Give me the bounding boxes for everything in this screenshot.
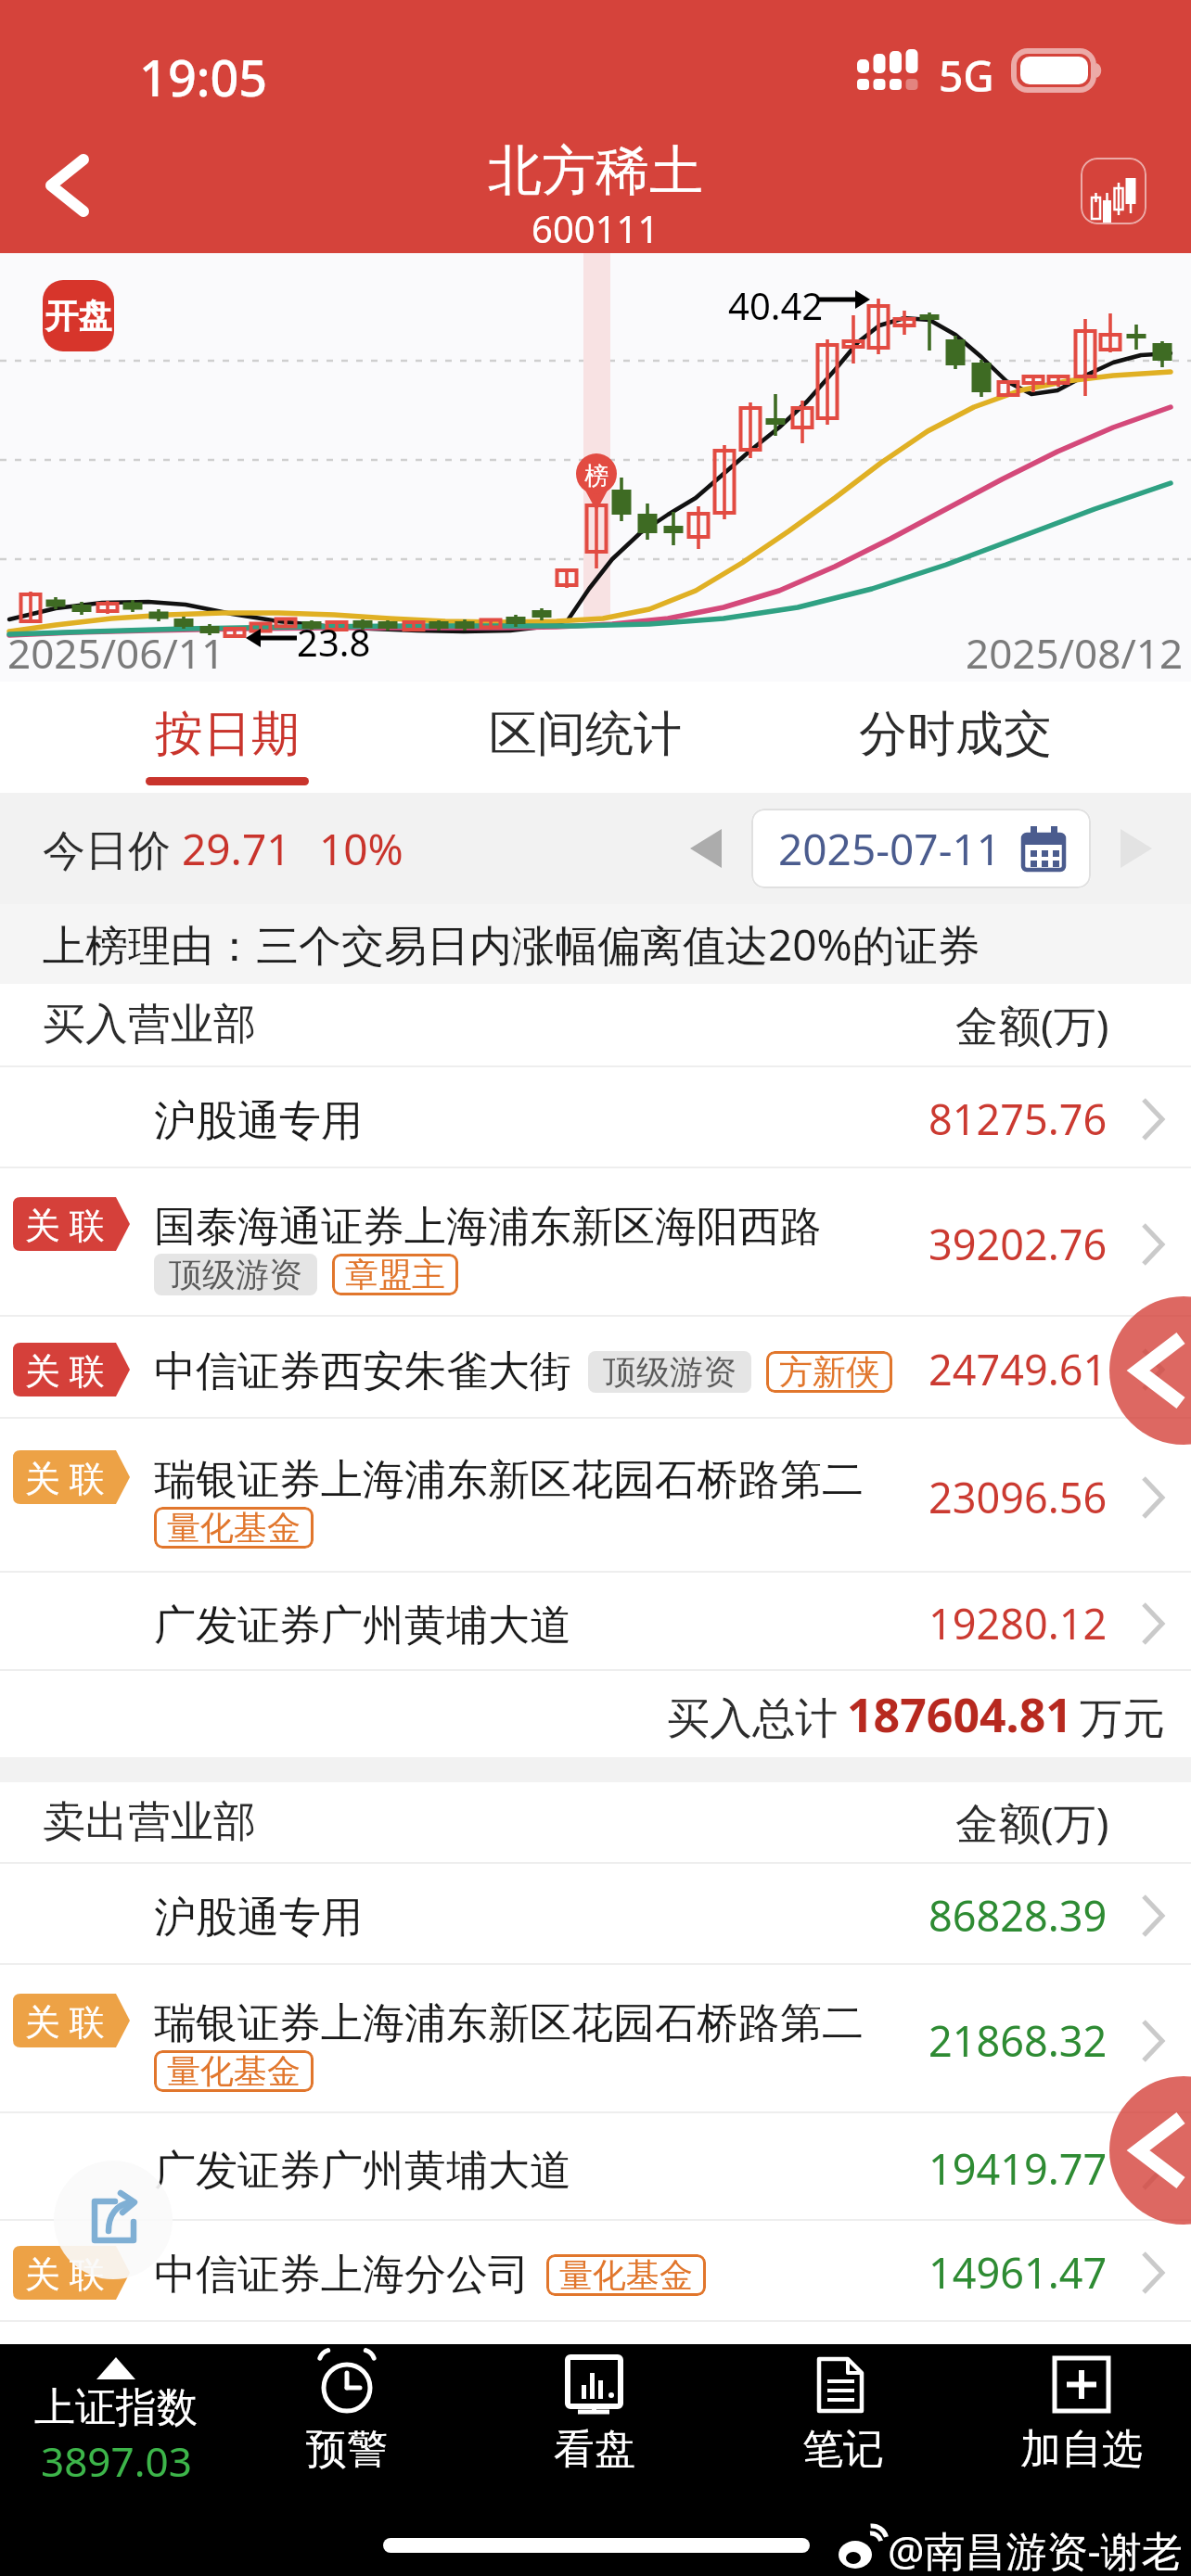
staticText: 沪股通专用 (154, 1892, 363, 1945)
staticText: 买入总计 (667, 1692, 838, 1746)
button[interactable]: 2025-07-11 (751, 809, 1091, 888)
staticText: 看盘 (554, 2424, 635, 2475)
button[interactable]: 关 联 (0, 2221, 1191, 2320)
staticText: 沪股通专用 (154, 1095, 363, 1148)
staticText: 金额(万) (955, 996, 1109, 1054)
staticText: 81275.76 (928, 1090, 1108, 1147)
button[interactable]: 沪股通专用 (0, 1067, 1191, 1167)
staticText: 23096.56 (928, 1469, 1108, 1525)
staticText: 按日期 (155, 704, 300, 765)
button[interactable]: 笔记 (741, 2344, 945, 2493)
staticText: 10% (319, 820, 403, 878)
staticText: 上榜理由：三个交易日内涨幅偏离值达20%的证券 (43, 915, 980, 974)
button[interactable]: 区间统计 (455, 682, 715, 793)
staticText: 19:05 (139, 43, 268, 111)
staticText: 2025/06/11 (7, 625, 225, 681)
staticText: 29.71 (182, 820, 291, 878)
staticText: 金额(万) (955, 1793, 1109, 1852)
button[interactable]: 关 联 (0, 1317, 1191, 1417)
staticText: 关 联 (25, 1996, 105, 2045)
button[interactable]: 上证指数 (0, 2344, 232, 2493)
staticText: 上证指数 (34, 2382, 198, 2433)
staticText: 2025-07-11 (778, 820, 1002, 878)
staticText: 86828.39 (928, 1887, 1108, 1944)
button[interactable]: Collapse panel (1109, 1296, 1191, 1445)
staticText: 顶级游资 (169, 1254, 302, 1295)
staticText: 关 联 (25, 1345, 105, 1394)
staticText: 187604.81 (847, 1683, 1072, 1746)
staticText: 量化基金 (559, 2254, 693, 2296)
staticText: 39202.76 (928, 1216, 1108, 1272)
staticText: 关 联 (25, 1453, 105, 1501)
button[interactable]: 关 联 (0, 1965, 1191, 2111)
staticText: 章盟主 (345, 1254, 445, 1295)
staticText: 2025/08/12 (966, 625, 1184, 681)
button[interactable]: K line chart (1081, 158, 1146, 224)
staticText: 24749.61 (928, 1341, 1108, 1397)
button[interactable]: 看盘 (493, 2344, 697, 2493)
staticText: 21868.32 (928, 2012, 1108, 2069)
staticText: 国泰海通证券上海浦东新区海阳西路 (154, 1201, 822, 1254)
button[interactable]: Previous day (670, 812, 742, 885)
button[interactable]: 按日期 (107, 682, 348, 793)
staticText: 关 联 (25, 1200, 105, 1248)
staticText: 瑞银证券上海浦东新区花园石桥路第二 (154, 1997, 864, 2050)
staticText: 开盘 (44, 295, 113, 337)
staticText: 19280.12 (928, 1595, 1108, 1651)
button[interactable]: 关 联 (0, 1419, 1191, 1571)
staticText: 中信证券上海分公司 (154, 2249, 530, 2302)
staticText: 顶级游资 (603, 1351, 736, 1393)
button[interactable]: Share (54, 2161, 173, 2279)
button[interactable]: 加自选 (980, 2344, 1184, 2493)
staticText: 关 联 (25, 2249, 105, 2297)
button[interactable]: 预警 (245, 2344, 449, 2493)
staticText: 量化基金 (167, 2050, 301, 2092)
staticText: 600111 (531, 203, 660, 253)
staticText: 3897.03 (41, 2433, 192, 2489)
staticText: 笔记 (802, 2424, 884, 2475)
staticText: 分时成交 (859, 704, 1052, 765)
staticText: 量化基金 (167, 1507, 301, 1549)
staticText: 预警 (306, 2424, 388, 2475)
staticText: 今日价 (43, 820, 182, 878)
staticText: 北方稀土 (488, 137, 703, 205)
staticText: @南昌游资-谢老 (888, 2522, 1183, 2576)
button[interactable]: 分时成交 (826, 682, 1085, 793)
button[interactable]: 广发证券广州黄埔大道 (0, 1573, 1191, 1669)
button[interactable]: 关 联 (0, 1168, 1191, 1315)
button[interactable]: 开盘 (43, 280, 114, 351)
staticText: 5G (939, 46, 994, 105)
staticText: 方新侠 (779, 1351, 879, 1393)
staticText: 榜 (584, 461, 608, 491)
staticText: 广发证券广州黄埔大道 (154, 1600, 571, 1652)
staticText: 加自选 (1020, 2424, 1143, 2475)
staticText: 卖出营业部 (43, 1795, 256, 1849)
button[interactable]: Next day (1100, 812, 1172, 885)
staticText: 23.8 (297, 617, 371, 667)
button[interactable]: Back (11, 130, 122, 241)
staticText: 40.42 (728, 280, 824, 330)
staticText: 19419.77 (928, 2140, 1108, 2197)
button[interactable]: 广发证券广州黄埔大道 (0, 2113, 1191, 2219)
staticText: 区间统计 (489, 704, 682, 765)
staticText: 14961.47 (928, 2244, 1108, 2301)
staticText: 买入营业部 (43, 998, 256, 1052)
staticText: 广发证券广州黄埔大道 (154, 2145, 571, 2198)
button[interactable]: 沪股通专用 (0, 1864, 1191, 1963)
staticText: 中信证券西安朱雀大街 (154, 1345, 571, 1398)
button[interactable]: Collapse panel (1109, 2076, 1191, 2225)
staticText: 瑞银证券上海浦东新区花园石桥路第二 (154, 1454, 864, 1507)
staticText: 万元 (1080, 1692, 1165, 1746)
